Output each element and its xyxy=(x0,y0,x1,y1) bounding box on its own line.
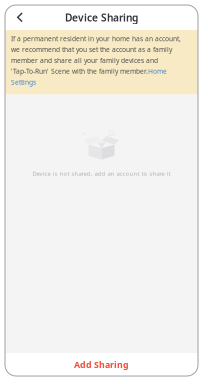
button[interactable]: Back xyxy=(10,5,30,29)
staticText: Add Sharing xyxy=(74,358,129,370)
staticText: member and share all your family devices… xyxy=(11,56,158,65)
button[interactable]: Add Sharing xyxy=(5,353,198,376)
staticText: Settings xyxy=(11,77,36,87)
staticText: Device Sharing xyxy=(65,11,138,24)
staticText: Home xyxy=(148,67,167,76)
staticText: Device is not shared, add an account to … xyxy=(32,170,170,178)
staticText: 'Tap-To-Run' Scene with the family membe… xyxy=(11,67,148,76)
staticText: If a permanent resident in your home has… xyxy=(11,34,181,43)
staticText: we recommend that you set the account as… xyxy=(11,45,172,54)
